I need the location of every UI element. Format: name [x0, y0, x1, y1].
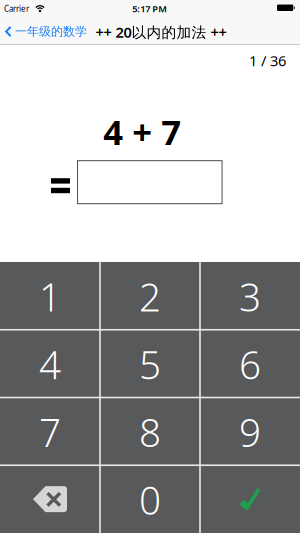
staticText: 8 — [139, 406, 161, 457]
button[interactable]: 9 — [200, 397, 300, 465]
staticText: 5 — [139, 338, 161, 390]
staticText: 2 — [139, 271, 161, 322]
staticText: Carrier — [4, 3, 29, 14]
button[interactable]: Back — [0, 19, 87, 44]
button[interactable]: 7 — [0, 397, 100, 465]
button[interactable]: 4 — [0, 330, 100, 398]
staticText: 9 — [239, 406, 261, 457]
button[interactable]: 6 — [200, 330, 300, 398]
button[interactable]: 5 — [100, 330, 200, 398]
button[interactable]: Confirm — [200, 465, 300, 533]
staticText: 5:17 PM — [132, 2, 167, 15]
staticText: 0 — [139, 474, 161, 525]
staticText: 一年级的数学 — [15, 24, 87, 39]
button[interactable]: 2 — [100, 262, 200, 330]
button[interactable]: 1 — [0, 262, 100, 330]
staticText: 7 — [39, 406, 61, 457]
staticText: 4 + 7 — [103, 109, 181, 155]
button[interactable]: 8 — [100, 397, 200, 465]
staticText: 3 — [239, 271, 261, 322]
staticText: 1 / 36 — [249, 51, 286, 70]
staticText: 1 — [39, 271, 61, 322]
staticText: 4 — [39, 338, 61, 390]
staticText: 6 — [239, 338, 261, 390]
button[interactable]: Delete — [0, 465, 100, 533]
button[interactable]: 3 — [200, 262, 300, 330]
button[interactable]: 0 — [100, 465, 200, 533]
staticText: ++ 20以内的加法 ++ — [95, 22, 226, 42]
